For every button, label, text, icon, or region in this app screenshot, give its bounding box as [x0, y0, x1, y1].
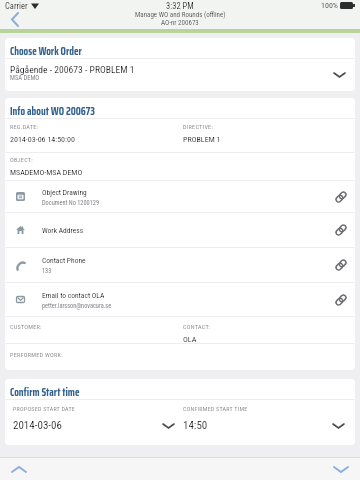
staticText: Email to contact OLA: [42, 291, 105, 300]
staticText: Document No 1200129: [42, 199, 100, 206]
staticText: PERFORMED WORK:: [10, 351, 63, 358]
staticText: OBJECT:: [10, 156, 33, 163]
staticText: PROBLEM 1: [183, 135, 221, 144]
button[interactable]: Email to contact OLA: [5, 283, 355, 316]
staticText: Manage WO and Rounds (offline): [135, 11, 226, 19]
staticText: MSADEMO-MSA DEMO: [10, 168, 83, 177]
staticText: CUSTOMER:: [10, 323, 42, 330]
staticText: 14:50: [183, 419, 208, 432]
button[interactable]: Previous: [6, 458, 32, 480]
staticText: 133: [42, 267, 52, 274]
button[interactable]: Open link: [327, 283, 355, 316]
staticText: REG.DATE:: [10, 123, 39, 130]
staticText: Contact Phone: [42, 256, 86, 265]
staticText: petter.larsson@novacura.se: [42, 302, 112, 309]
staticText: 2014-03-06: [13, 419, 62, 432]
staticText: CONTACT:: [183, 323, 211, 330]
staticText: PROPOSED START DATE: [13, 405, 76, 412]
staticText: Work Address: [42, 226, 84, 235]
button[interactable]: Work Address: [5, 213, 355, 247]
staticText: Info about WO 200673: [10, 103, 95, 120]
button[interactable]: Open link: [327, 181, 355, 212]
button[interactable]: Next: [328, 458, 354, 480]
staticText: AO-nr 200673: [161, 19, 199, 27]
staticText: 3:32 PM: [166, 1, 194, 11]
staticText: Pågående - 200673 - PROBLEM 1: [10, 64, 135, 75]
button[interactable]: Open link: [327, 248, 355, 282]
button[interactable]: Pågående - 200673 - PROBLEM 1: [5, 59, 355, 90]
staticText: Object Drawing: [42, 188, 87, 197]
button[interactable]: Back: [4, 8, 26, 30]
staticText: 100%: [321, 1, 338, 10]
staticText: 2014-03-06 14:50:00: [10, 135, 75, 144]
staticText: CONFIRMED START TIME: [183, 405, 248, 412]
staticText: MSA DEMO: [10, 74, 40, 82]
staticText: DIRECTIVE:: [183, 123, 214, 130]
button[interactable]: Object Drawing: [5, 181, 355, 212]
staticText: Confirm Start time: [10, 384, 80, 401]
button[interactable]: Open link: [327, 213, 355, 247]
button[interactable]: Contact Phone: [5, 248, 355, 282]
staticText: Carrier: [5, 1, 28, 11]
staticText: Choose Work Order: [10, 43, 82, 60]
staticText: OLA: [183, 335, 197, 344]
